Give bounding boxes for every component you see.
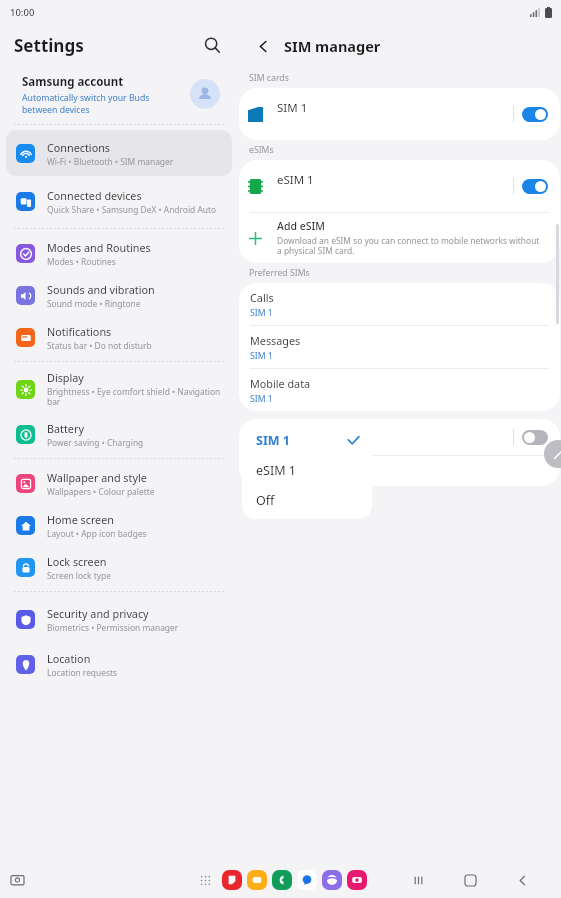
- button[interactable]: SIM 1: [239, 88, 560, 140]
- button[interactable]: Mobile data: [239, 369, 560, 411]
- staticText: Off: [256, 492, 275, 509]
- staticText: Preferred SIMs: [249, 267, 310, 279]
- staticText: Settings: [14, 34, 84, 57]
- staticText: Wallpaper and style: [47, 470, 147, 485]
- button[interactable]: More SIM settings: [239, 456, 560, 486]
- staticText: eSIMs: [249, 144, 274, 156]
- button[interactable]: eSIM 1: [239, 160, 560, 212]
- staticText: SIM 1: [250, 350, 273, 362]
- button[interactable]: App 5: [347, 870, 367, 890]
- staticText: Samsung account: [22, 74, 124, 90]
- button[interactable]: Back: [250, 33, 276, 59]
- button[interactable]: Toggle: [522, 179, 548, 194]
- staticText: Wallpapers • Colour palette: [47, 486, 155, 497]
- button[interactable]: App 4: [322, 870, 342, 890]
- button[interactable]: Off: [242, 485, 372, 515]
- button[interactable]: Toggle: [522, 107, 548, 122]
- button[interactable]: Wallpaper and style: [6, 463, 232, 503]
- staticText: SIM 1: [256, 432, 290, 449]
- button[interactable]: Screenshot: [6, 869, 28, 891]
- staticText: Status bar • Do not disturb: [47, 340, 152, 351]
- staticText: Automatically switch your Buds between d…: [22, 92, 182, 115]
- staticText: 10:00: [10, 6, 35, 19]
- button[interactable]: Battery: [6, 414, 232, 454]
- staticText: Layout • App icon badges: [47, 528, 147, 539]
- button[interactable]: Recents: [405, 867, 431, 893]
- button[interactable]: Connections: [6, 130, 232, 176]
- button[interactable]: Lock screen: [6, 547, 232, 587]
- button[interactable]: Calls: [239, 283, 560, 325]
- button[interactable]: Apps: [194, 869, 216, 891]
- button[interactable]: Toggle: [522, 430, 548, 445]
- staticText: eSIM 1: [277, 172, 513, 188]
- staticText: Security and privacy: [47, 606, 149, 621]
- button[interactable]: Add eSIM: [239, 213, 560, 263]
- button[interactable]: Back up calling: [239, 419, 560, 455]
- button[interactable]: Display: [6, 366, 232, 412]
- staticText: Power saving • Charging: [47, 437, 144, 448]
- staticText: Notifications: [47, 324, 112, 339]
- staticText: Battery: [47, 421, 84, 436]
- button[interactable]: Security and privacy: [6, 596, 232, 642]
- staticText: SIM manager: [284, 36, 381, 56]
- staticText: More SIM settings: [250, 464, 342, 479]
- button[interactable]: Search: [198, 31, 226, 59]
- staticText: Add eSIM: [277, 219, 325, 233]
- button[interactable]: App 1: [247, 870, 267, 890]
- button[interactable]: SIM 1: [242, 425, 372, 455]
- button[interactable]: App 3: [297, 870, 317, 890]
- button[interactable]: Messages: [239, 326, 560, 368]
- staticText: SIM 1: [250, 307, 273, 319]
- staticText: Display: [47, 370, 84, 385]
- staticText: Sounds and vibration: [47, 282, 155, 297]
- staticText: Back up calling: [250, 430, 513, 445]
- staticText: Download an eSIM so you can connect to m…: [277, 235, 546, 257]
- button[interactable]: Samsung account: [0, 66, 238, 122]
- staticText: Quick Share • Samsung DeX • Android Auto: [47, 204, 217, 215]
- staticText: Connections: [47, 140, 111, 155]
- button[interactable]: Modes and Routines: [6, 233, 232, 273]
- button[interactable]: Notifications: [6, 317, 232, 357]
- staticText: SIM cards: [249, 72, 289, 84]
- button[interactable]: Sounds and vibration: [6, 275, 232, 315]
- staticText: Screen lock type: [47, 570, 111, 581]
- staticText: Connected devices: [47, 188, 142, 203]
- staticText: Modes and Routines: [47, 240, 151, 255]
- staticText: Home screen: [47, 512, 114, 527]
- staticText: Wi-Fi • Bluetooth • SIM manager: [47, 156, 174, 167]
- staticText: Modes • Routines: [47, 256, 116, 267]
- staticText: Location requests: [47, 667, 118, 678]
- button[interactable]: Connected devices: [6, 178, 232, 224]
- button[interactable]: Home: [457, 867, 483, 893]
- staticText: Biometrics • Permission manager: [47, 622, 179, 633]
- staticText: Brightness • Eye comfort shield • Naviga…: [47, 386, 222, 408]
- button[interactable]: App 2: [272, 870, 292, 890]
- button[interactable]: Edit: [544, 440, 561, 468]
- staticText: SIM 1: [250, 393, 273, 405]
- staticText: Location: [47, 651, 91, 666]
- staticText: eSIM 1: [256, 462, 296, 479]
- staticText: Sound mode • Ringtone: [47, 298, 141, 309]
- button[interactable]: App 0: [222, 870, 242, 890]
- staticText: Lock screen: [47, 554, 107, 569]
- staticText: Calls: [250, 290, 274, 305]
- button[interactable]: Location: [6, 644, 232, 684]
- staticText: Mobile data: [250, 376, 311, 391]
- staticText: SIM 1: [277, 100, 513, 116]
- staticText: Messages: [250, 333, 301, 348]
- button[interactable]: eSIM 1: [242, 455, 372, 485]
- button[interactable]: Back: [509, 867, 535, 893]
- button[interactable]: Home screen: [6, 505, 232, 545]
